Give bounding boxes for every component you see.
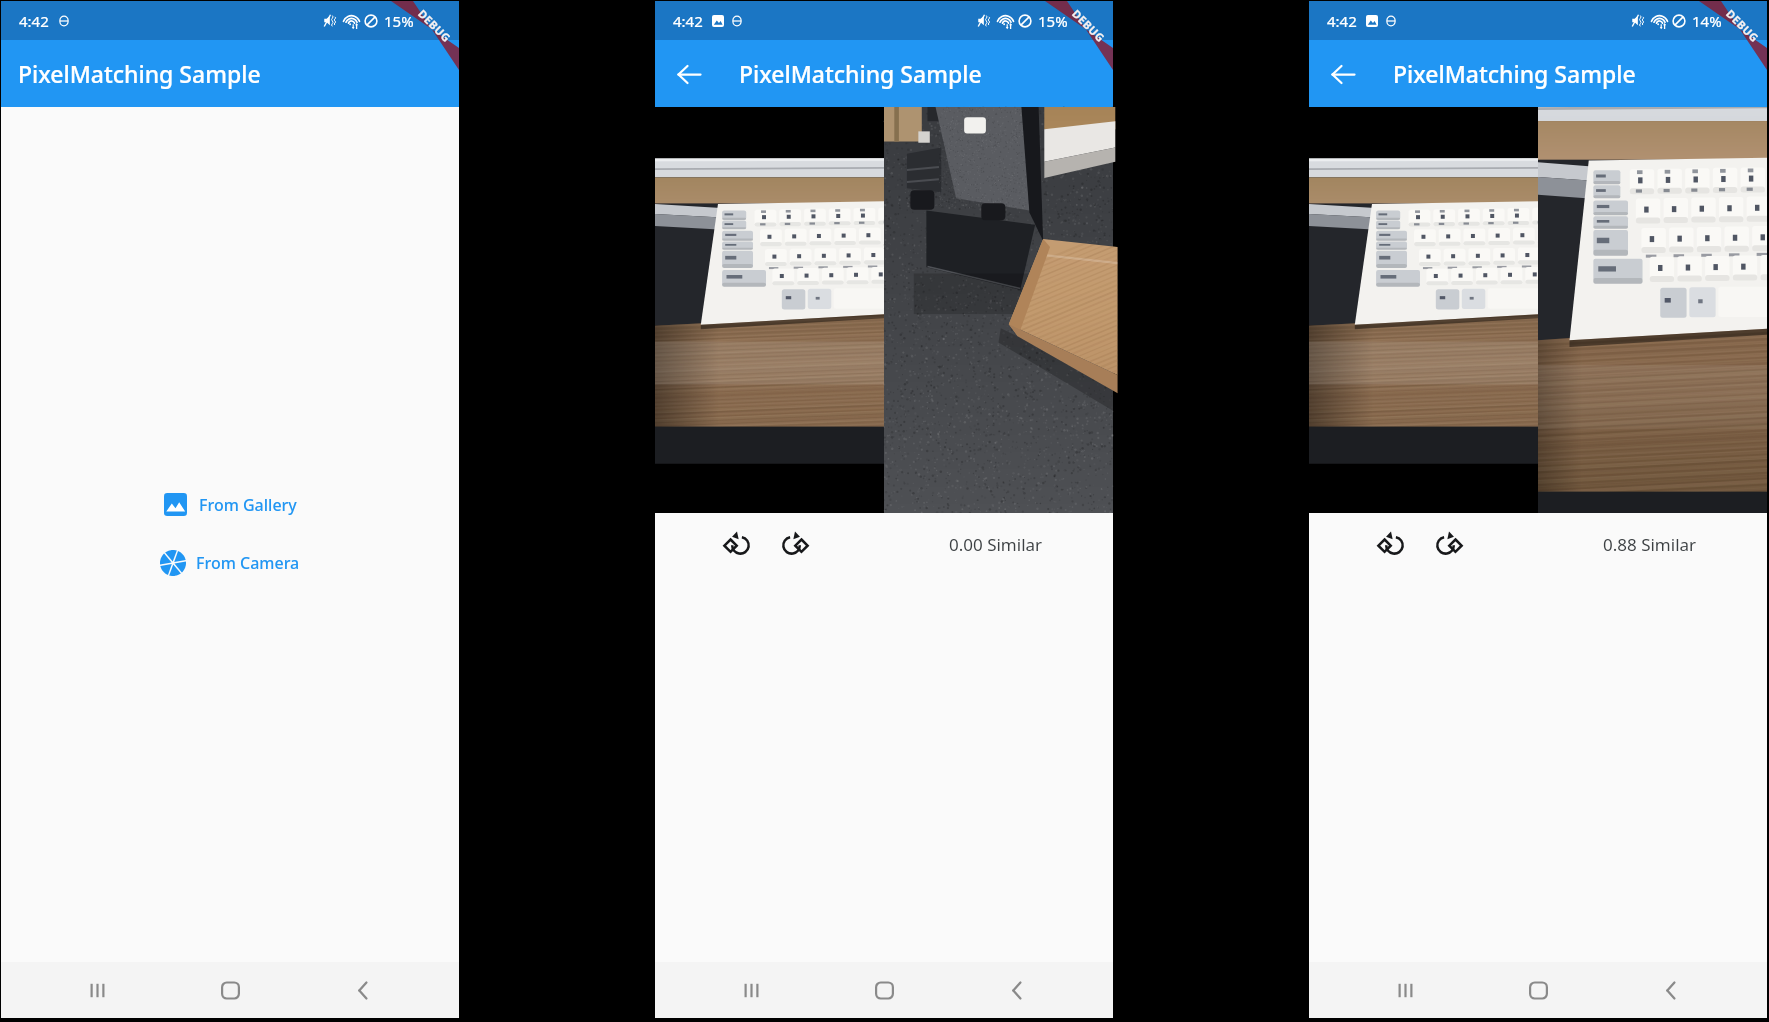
staticText: PixelMatching Sample xyxy=(739,58,982,89)
staticText: 15% xyxy=(1038,11,1068,31)
staticText: From Gallery xyxy=(199,494,297,516)
staticText: DEBUG xyxy=(1069,6,1109,45)
button[interactable]: Rotate left xyxy=(717,524,757,564)
staticText: 14% xyxy=(1692,11,1722,31)
staticText: PixelMatching Sample xyxy=(1393,58,1636,89)
button[interactable]: From Camera xyxy=(160,550,300,576)
staticText: DEBUG xyxy=(1723,6,1763,45)
button[interactable]: Back xyxy=(1317,48,1369,100)
staticText: 4:42 xyxy=(1327,11,1357,31)
button[interactable]: From Gallery xyxy=(164,493,297,516)
staticText: 15% xyxy=(384,11,414,31)
button[interactable]: Back xyxy=(326,962,400,1018)
button[interactable]: Home xyxy=(847,962,921,1018)
staticText: 4:42 xyxy=(19,11,49,31)
button[interactable]: Recents xyxy=(1368,962,1442,1018)
staticText: 0.88 Similar xyxy=(1603,533,1697,556)
staticText: 0.00 Similar xyxy=(949,533,1043,556)
button[interactable]: Rotate right xyxy=(775,524,815,564)
button[interactable]: Home xyxy=(193,962,267,1018)
button[interactable]: Home xyxy=(1501,962,1575,1018)
staticText: From Camera xyxy=(196,552,300,574)
button[interactable]: Recents xyxy=(714,962,788,1018)
button[interactable]: Back xyxy=(980,962,1054,1018)
button[interactable]: Back xyxy=(1634,962,1708,1018)
staticText: DEBUG xyxy=(415,6,455,45)
button[interactable]: Recents xyxy=(60,962,134,1018)
button[interactable]: Rotate right xyxy=(1429,524,1469,564)
staticText: 4:42 xyxy=(673,11,703,31)
staticText: PixelMatching Sample xyxy=(18,58,261,89)
button[interactable]: Back xyxy=(663,48,715,100)
button[interactable]: Rotate left xyxy=(1371,524,1411,564)
